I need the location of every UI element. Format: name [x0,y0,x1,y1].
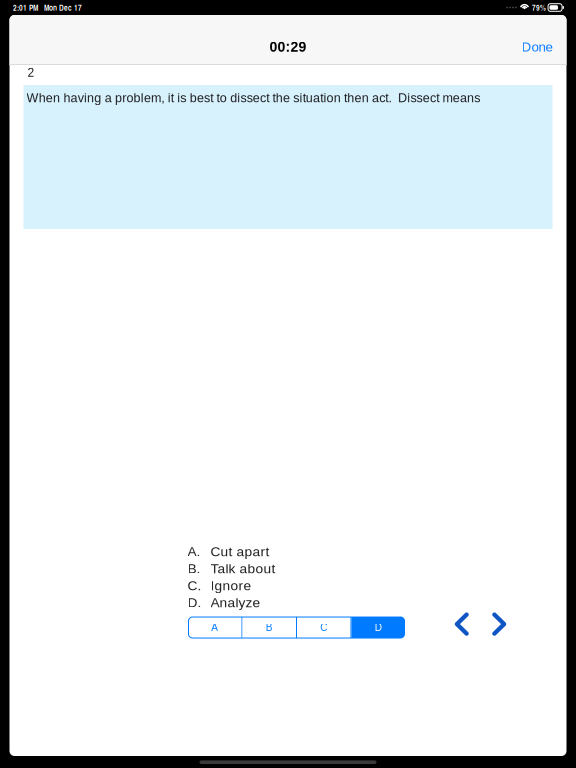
staticText: Cut apart [210,544,269,559]
button[interactable]: D [351,617,405,638]
staticText: When having a problem, it is best to dis… [26,91,480,105]
staticText: C. [187,578,201,593]
staticText: 79% [532,2,546,13]
button[interactable]: Previous question [449,607,474,641]
staticText: Ignore [210,578,251,593]
button[interactable]: A [188,617,241,638]
staticText: D [375,622,382,633]
button[interactable]: C [297,617,350,638]
staticText: Done [521,40,552,54]
button[interactable]: B [242,617,296,638]
button[interactable]: Done [512,28,561,66]
staticText: Talk about [210,561,275,576]
staticText: B. [187,561,200,576]
staticText: B [266,622,273,633]
button[interactable]: Next question [487,607,511,641]
staticText: Mon Dec 17 [44,2,82,13]
staticText: A [211,622,218,633]
staticText: C [320,622,327,633]
staticText: A. [187,544,200,559]
staticText: 2:01 PM [13,2,38,13]
staticText: D. [187,595,201,610]
staticText: 2 [27,66,34,79]
staticText: 00:29 [269,39,306,55]
staticText: Analyze [210,595,260,610]
